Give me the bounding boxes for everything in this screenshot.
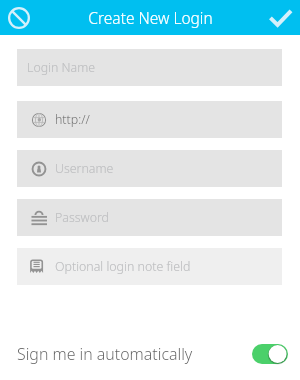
- button[interactable]: http://: [17, 101, 282, 138]
- staticText: http://: [55, 111, 90, 128]
- staticText: Login Name: [27, 59, 96, 76]
- button[interactable]: Username: [17, 150, 282, 187]
- staticText: Optional login note field: [55, 258, 191, 275]
- button[interactable]: Sign me in automatically: [252, 344, 288, 364]
- button[interactable]: Login Name: [17, 49, 282, 86]
- button[interactable]: Save: [264, 0, 300, 35]
- button[interactable]: Cancel: [0, 0, 36, 35]
- staticText: Password: [55, 209, 110, 226]
- button[interactable]: Optional login note field: [17, 248, 282, 285]
- button[interactable]: Password: [17, 199, 282, 236]
- staticText: Create New Login: [88, 7, 213, 28]
- staticText: Username: [55, 160, 114, 177]
- staticText: Sign me in automatically: [17, 343, 193, 365]
